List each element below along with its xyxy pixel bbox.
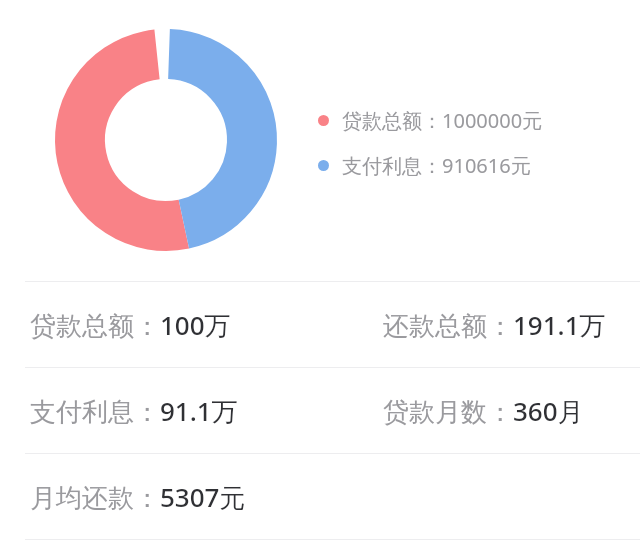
button[interactable]: 贷款构成环形图 — [55, 29, 277, 251]
staticText: 支付利息：91.1万 — [30, 393, 238, 429]
staticText: 支付利息：910616元 — [342, 152, 531, 179]
staticText: 月均还款：5307元 — [30, 479, 246, 515]
button[interactable]: 月均还款：5307元 — [0, 454, 640, 539]
button[interactable]: 支付利息：91.1万 — [0, 368, 640, 453]
button[interactable]: 支付利息：910616元 — [318, 150, 531, 181]
staticText: 贷款总额：1000000元 — [342, 107, 543, 134]
staticText: 还款总额：191.1万 — [383, 307, 606, 343]
staticText: 贷款总额：100万 — [30, 307, 231, 343]
button[interactable]: 贷款总额：1000000元 — [318, 105, 543, 136]
button[interactable]: 贷款总额：100万 — [0, 282, 640, 367]
staticText: 贷款月数：360月 — [383, 393, 584, 429]
